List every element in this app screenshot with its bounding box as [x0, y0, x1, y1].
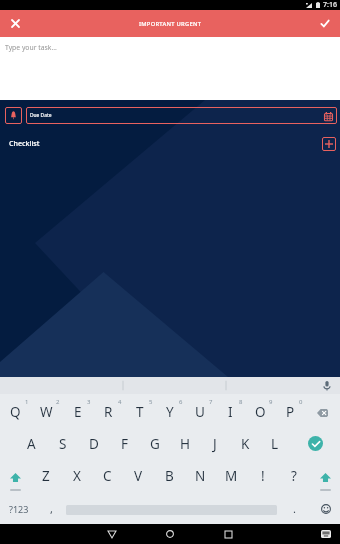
- button[interactable]: V: [123, 459, 154, 492]
- staticText: 1: [25, 398, 29, 406]
- button[interactable]: ,: [37, 492, 66, 525]
- staticText: V: [134, 467, 143, 485]
- staticText: M: [225, 467, 238, 485]
- button[interactable]: Recents: [210, 524, 246, 544]
- staticText: .: [293, 501, 296, 516]
- staticText: 9: [269, 398, 273, 406]
- staticText: U: [195, 403, 205, 421]
- button[interactable]: ?123: [0, 492, 37, 525]
- button[interactable]: M: [216, 459, 247, 492]
- staticText: E: [74, 403, 82, 421]
- button[interactable]: X: [61, 459, 92, 492]
- staticText: Due Date: [30, 112, 52, 119]
- button[interactable]: L: [260, 427, 290, 460]
- button[interactable]: 4: [93, 394, 124, 427]
- staticText: 6: [179, 398, 183, 406]
- button[interactable]: 7: [185, 394, 215, 427]
- button[interactable]: Voice input: [320, 379, 334, 393]
- staticText: I: [228, 403, 233, 421]
- button[interactable]: 6: [155, 394, 185, 427]
- button[interactable]: Home: [152, 524, 188, 544]
- button[interactable]: 3: [62, 394, 93, 427]
- staticText: C: [103, 467, 112, 485]
- button[interactable]: N: [185, 459, 216, 492]
- button[interactable]: 0: [275, 394, 305, 427]
- button[interactable]: G: [140, 427, 170, 460]
- staticText: ,: [50, 501, 53, 516]
- button[interactable]: 9: [245, 394, 275, 427]
- button[interactable]: Due Date: [26, 107, 337, 124]
- button[interactable]: J: [200, 427, 230, 460]
- button[interactable]: Switch keyboard: [318, 526, 334, 542]
- staticText: P: [286, 403, 295, 421]
- staticText: !: [261, 467, 265, 485]
- staticText: Checklist: [9, 138, 40, 148]
- staticText: 7:16: [323, 0, 337, 10]
- button[interactable]: D: [78, 427, 109, 460]
- button[interactable]: Close: [0, 10, 30, 37]
- button[interactable]: Reminder: [5, 107, 22, 124]
- button[interactable]: A: [16, 427, 47, 460]
- staticText: X: [73, 467, 81, 485]
- staticText: H: [180, 435, 191, 453]
- staticText: K: [241, 435, 250, 453]
- staticText: Q: [10, 403, 21, 421]
- button[interactable]: Shift: [309, 459, 340, 492]
- button[interactable]: .: [277, 492, 311, 525]
- button[interactable]: 2: [31, 394, 62, 427]
- button[interactable]: Save: [310, 10, 340, 37]
- staticText: S: [59, 435, 67, 453]
- staticText: 7: [209, 398, 213, 406]
- staticText: 0: [299, 398, 303, 406]
- staticText: W: [40, 403, 53, 421]
- staticText: Y: [166, 403, 174, 421]
- staticText: N: [195, 467, 206, 485]
- button[interactable]: Space: [66, 492, 277, 525]
- staticText: Type your task...: [5, 43, 57, 52]
- staticText: J: [213, 435, 217, 453]
- staticText: L: [271, 435, 279, 453]
- staticText: O: [255, 403, 266, 421]
- button[interactable]: 1: [0, 394, 31, 427]
- staticText: 5: [149, 398, 153, 406]
- staticText: 2: [56, 398, 60, 406]
- button[interactable]: Z: [30, 459, 61, 492]
- button[interactable]: Backspace: [305, 394, 340, 427]
- button[interactable]: B: [154, 459, 185, 492]
- button[interactable]: H: [170, 427, 200, 460]
- button[interactable]: Add checklist item: [322, 137, 336, 151]
- button[interactable]: S: [47, 427, 78, 460]
- staticText: IMPORTANT URGENT: [139, 20, 202, 28]
- button[interactable]: F: [109, 427, 140, 460]
- staticText: F: [121, 435, 129, 453]
- button[interactable]: 8: [215, 394, 245, 427]
- staticText: 3: [87, 398, 91, 406]
- button[interactable]: K: [230, 427, 260, 460]
- button[interactable]: ?: [278, 459, 309, 492]
- staticText: 8: [239, 398, 243, 406]
- button[interactable]: 5: [124, 394, 155, 427]
- button[interactable]: C: [92, 459, 123, 492]
- staticText: A: [27, 435, 36, 453]
- staticText: R: [104, 403, 113, 421]
- button[interactable]: Emoji: [311, 492, 340, 525]
- staticText: 4: [118, 398, 122, 406]
- button[interactable]: Enter: [290, 427, 340, 460]
- button[interactable]: Back: [94, 524, 130, 544]
- button[interactable]: !: [247, 459, 278, 492]
- staticText: B: [165, 467, 174, 485]
- staticText: T: [136, 403, 144, 421]
- button[interactable]: Shift: [0, 459, 30, 492]
- staticText: ?123: [9, 503, 29, 515]
- staticText: D: [89, 435, 99, 453]
- staticText: G: [150, 435, 160, 453]
- staticText: Z: [42, 467, 50, 485]
- staticText: ?: [291, 467, 297, 485]
